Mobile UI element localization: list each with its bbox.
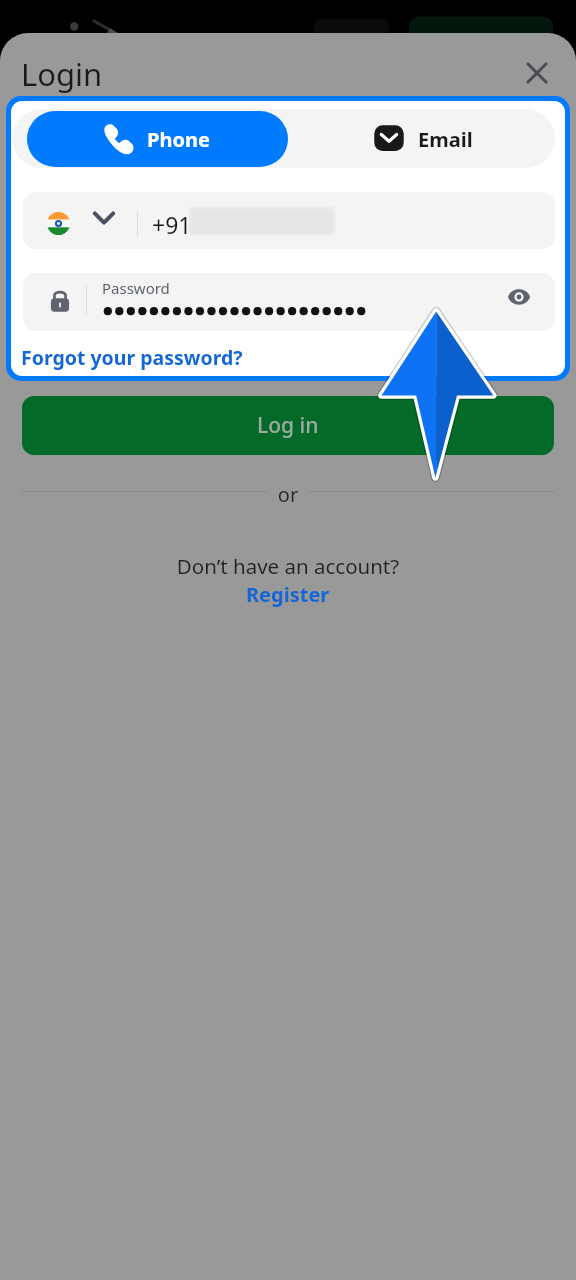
button[interactable]: Register — [246, 581, 330, 608]
staticText: Register — [246, 581, 330, 608]
button[interactable]: +91 — [23, 192, 555, 249]
staticText: +91 — [152, 209, 192, 240]
staticText: Don’t have an account? — [0, 552, 576, 580]
button[interactable]: Close — [514, 50, 560, 96]
button[interactable]: Email — [288, 109, 555, 168]
button[interactable]: Show password — [497, 275, 541, 319]
staticText: Log in — [257, 411, 319, 440]
staticText: Phone — [147, 126, 210, 153]
button[interactable]: Forgot your password? — [21, 344, 243, 371]
staticText: or — [0, 481, 576, 508]
staticText: Password — [102, 278, 170, 298]
staticText: Login — [21, 53, 103, 95]
staticText: Email — [418, 126, 473, 153]
button[interactable]: Phone — [27, 111, 288, 167]
button[interactable]: Log in — [22, 396, 554, 455]
button[interactable]: Login — [21, 53, 103, 95]
button[interactable]: Password — [23, 273, 555, 331]
staticText: Forgot your password? — [21, 344, 243, 371]
